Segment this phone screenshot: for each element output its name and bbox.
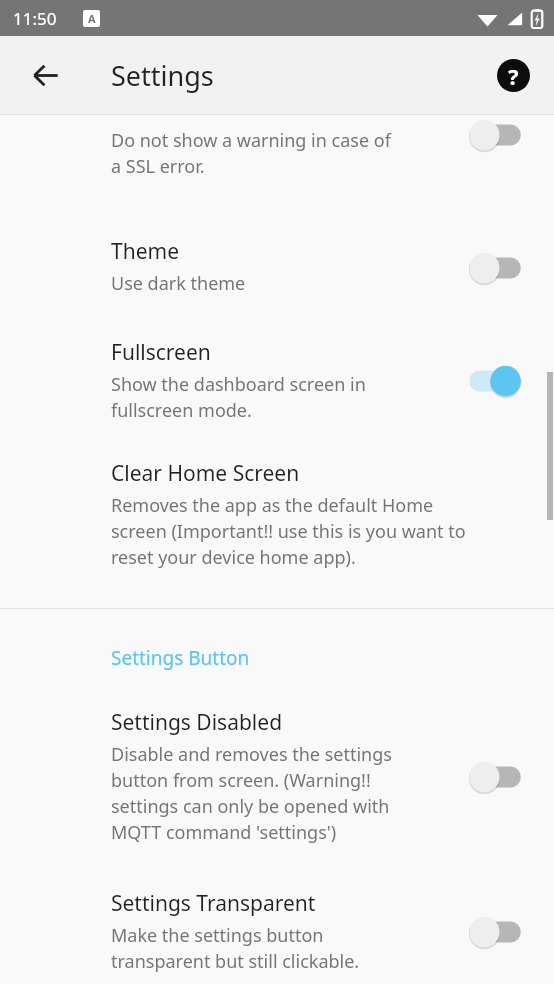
staticText: Make the settings button transparent but… [111,923,360,974]
staticText: Theme [111,237,179,266]
button[interactable]: Fullscreen toggle [466,362,524,400]
button[interactable]: Ignore SSL errors toggle [466,116,524,154]
staticText: Settings Button [111,645,250,671]
staticText: Do not show a warning in case of a SSL e… [111,128,391,179]
staticText: Clear Home Screen [111,459,300,488]
staticText: Removes the app as the default Home scre… [111,493,466,570]
button[interactable]: Do not show a warning in case of a SSL e… [0,128,554,179]
button[interactable]: Clear Home Screen [0,459,554,570]
button[interactable]: Help [491,53,535,97]
button[interactable]: Settings transparent toggle [466,913,524,951]
staticText: Disable and removes the settings button … [111,742,392,845]
staticText: Settings Disabled [111,708,283,737]
staticText: A [88,11,96,26]
staticText: ? [508,61,519,91]
staticText: Settings Transparent [111,889,316,918]
staticText: Fullscreen [111,338,211,367]
button[interactable]: Theme [0,237,554,296]
staticText: 11:50 [13,7,57,30]
button[interactable]: Dark theme toggle [466,249,524,287]
staticText: Settings [111,57,214,94]
button[interactable]: Settings disabled toggle [466,758,524,796]
staticText: Use dark theme [111,271,246,296]
button[interactable]: Settings Transparent [0,889,554,974]
staticText: Show the dashboard screen in fullscreen … [111,372,366,423]
button[interactable]: Fullscreen [0,338,554,423]
button[interactable]: Back [21,51,69,99]
button[interactable]: Settings Disabled [0,708,554,845]
